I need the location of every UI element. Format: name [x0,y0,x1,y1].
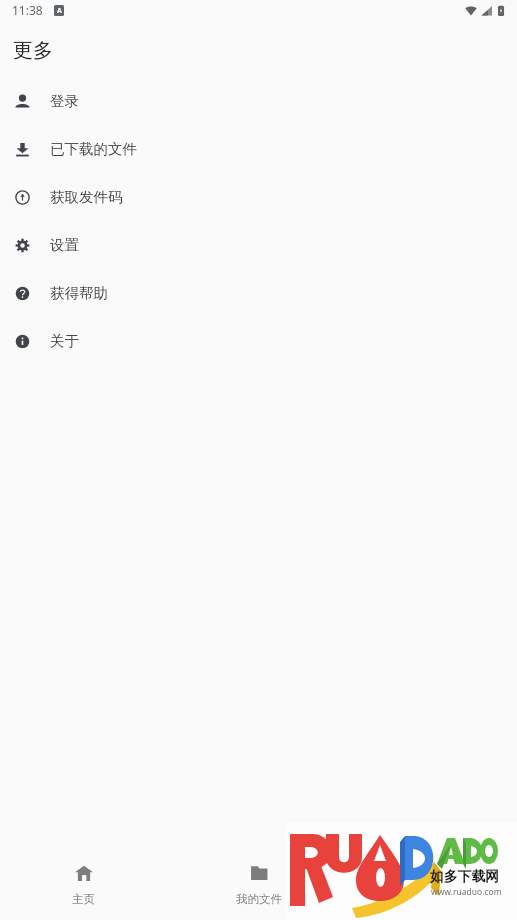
button[interactable]: Home [0,844,170,920]
other: Get help [0,285,44,302]
other: Settings [0,237,44,254]
staticText: 设置 [50,236,79,254]
other: Sign in [0,93,44,110]
other: About [0,333,44,350]
staticText: 登录 [50,92,79,110]
staticText: 已下载的文件 [50,140,137,158]
button[interactable]: Get help [0,269,517,317]
button[interactable]: More [345,844,517,920]
staticText: 如多下载网 [430,868,499,885]
staticText: 获取发件码 [50,188,123,206]
staticText: 更多 [13,38,53,63]
staticText: 11:38 [12,2,43,18]
staticText: 获得帮助 [50,284,108,302]
other: Get sender code [0,189,44,206]
staticText: 我的文件 [236,892,282,906]
button[interactable]: Downloaded files [0,125,517,173]
staticText: www.ruaduo.com [431,886,502,898]
button[interactable]: My files [173,844,345,920]
staticText: A [57,6,62,16]
staticText: 关于 [50,332,79,350]
button[interactable]: Get sender code [0,173,517,221]
button[interactable]: Sign in [0,77,517,125]
other: Downloaded files [0,141,44,158]
staticText: 更多 [420,892,443,906]
button[interactable]: Settings [0,221,517,269]
staticText: 主页 [72,892,95,906]
button[interactable]: About [0,317,517,365]
